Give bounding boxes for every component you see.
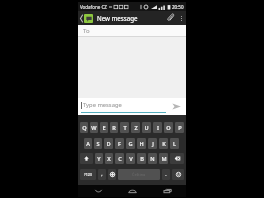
button[interactable]: Change language <box>108 169 116 180</box>
button[interactable]: Send <box>170 100 183 113</box>
button[interactable]: L <box>170 138 179 149</box>
staticText: I <box>157 124 159 132</box>
staticText: Čeština <box>132 172 146 177</box>
staticText: New message <box>97 14 138 22</box>
button[interactable]: W <box>90 122 98 133</box>
staticText: G <box>128 140 133 148</box>
button[interactable]: E <box>100 122 108 133</box>
staticText: 20:50 <box>172 4 184 10</box>
button[interactable]: Attach <box>163 11 177 25</box>
button[interactable]: R <box>110 122 118 133</box>
staticText: V <box>129 155 133 163</box>
button[interactable]: Type message <box>81 101 166 113</box>
button[interactable]: J <box>148 138 157 149</box>
staticText: R <box>112 124 116 132</box>
button[interactable]: T <box>120 122 129 133</box>
button[interactable]: I <box>153 122 162 133</box>
staticText: W <box>91 124 97 132</box>
staticText: K <box>162 140 166 148</box>
button[interactable]: U <box>142 122 151 133</box>
staticText: J <box>152 140 154 148</box>
staticText: . <box>165 171 167 178</box>
button[interactable]: Recent apps <box>152 185 182 197</box>
button[interactable]: More options <box>177 11 186 25</box>
staticText: Type message <box>83 101 122 109</box>
button[interactable]: V <box>126 153 135 164</box>
button[interactable]: A <box>84 138 92 149</box>
staticText: A <box>86 140 90 148</box>
staticText: T <box>123 124 127 132</box>
staticText: O <box>166 124 171 132</box>
staticText: Y <box>97 155 101 163</box>
staticText: M <box>161 155 167 163</box>
staticText: Q <box>82 124 87 132</box>
button[interactable]: D <box>104 138 113 149</box>
button[interactable]: C <box>115 153 124 164</box>
button[interactable]: ?123 <box>80 169 96 180</box>
button[interactable]: N <box>148 153 157 164</box>
staticText: H <box>139 140 144 148</box>
button[interactable]: P <box>175 122 184 133</box>
button[interactable]: G <box>126 138 135 149</box>
staticText: X <box>107 155 111 163</box>
staticText: Vodafone CZ <box>80 4 107 10</box>
staticText: U <box>144 124 149 132</box>
staticText: L <box>173 140 176 148</box>
staticText: F <box>118 140 121 148</box>
button[interactable]: Emoji <box>172 169 184 180</box>
button[interactable]: Back <box>83 185 113 197</box>
button[interactable]: M <box>159 153 168 164</box>
staticText: ?123 <box>84 172 92 177</box>
button[interactable]: Y <box>95 153 103 164</box>
button[interactable]: . <box>162 169 170 180</box>
button[interactable]: X <box>105 153 113 164</box>
staticText: D <box>106 140 111 148</box>
staticText: P <box>178 124 182 132</box>
staticText: Z <box>134 124 138 132</box>
button[interactable]: F <box>115 138 124 149</box>
button[interactable]: , <box>98 169 106 180</box>
staticText: S <box>96 140 100 148</box>
staticText: C <box>118 155 122 163</box>
button[interactable]: Navigate up <box>78 11 95 25</box>
button[interactable]: Q <box>80 122 88 133</box>
button[interactable]: H <box>137 138 146 149</box>
button[interactable]: Z <box>131 122 140 133</box>
button[interactable]: O <box>164 122 173 133</box>
button[interactable]: B <box>137 153 146 164</box>
staticText: N <box>150 155 155 163</box>
staticText: E <box>102 124 106 132</box>
staticText: To <box>83 27 90 35</box>
staticText: , <box>101 171 103 178</box>
button[interactable]: S <box>94 138 102 149</box>
button[interactable]: Home <box>117 185 147 197</box>
button[interactable]: To <box>78 25 186 37</box>
button[interactable]: Backspace <box>170 153 184 164</box>
staticText: B <box>140 155 144 163</box>
button[interactable]: K <box>159 138 168 149</box>
button[interactable]: Shift <box>80 153 93 164</box>
